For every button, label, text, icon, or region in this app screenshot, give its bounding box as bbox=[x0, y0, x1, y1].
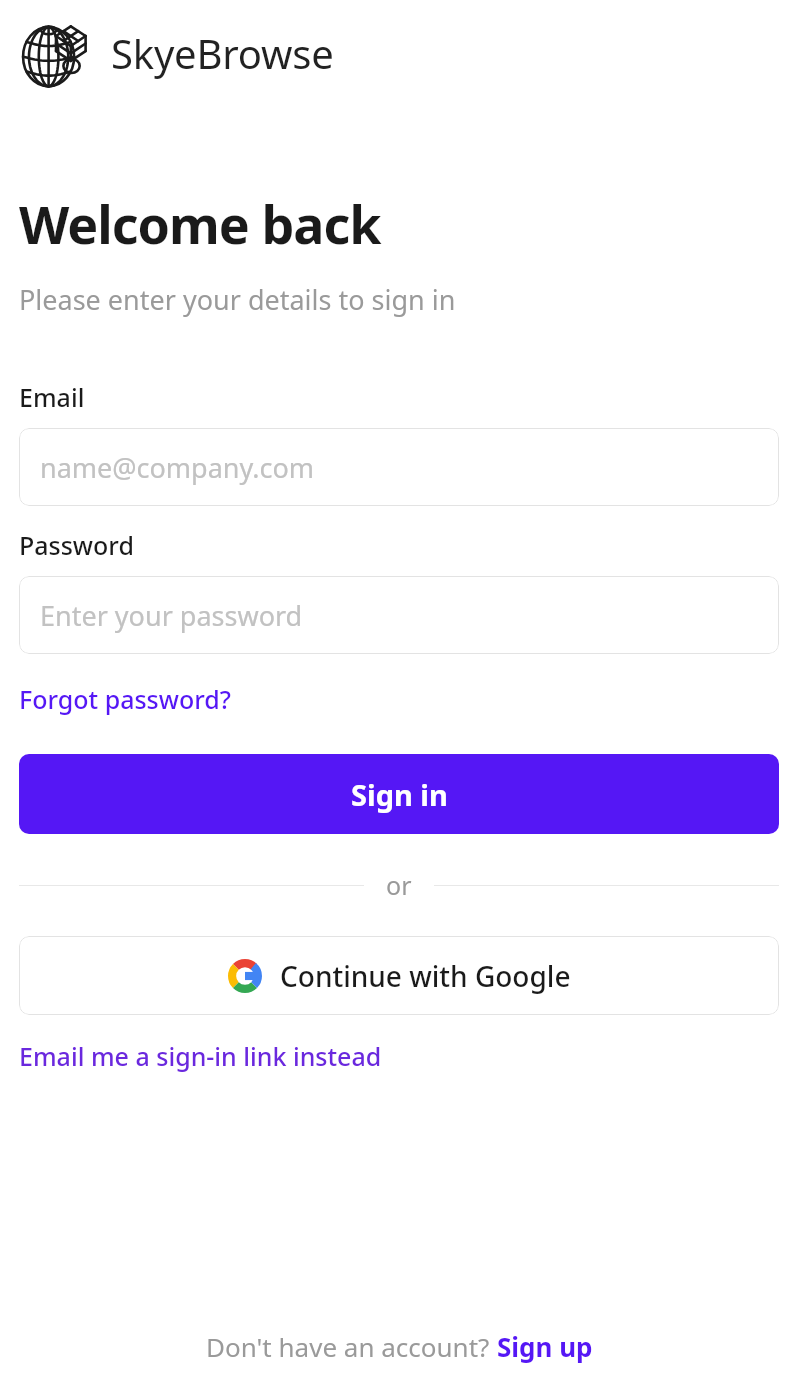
button[interactable]: Google bbox=[19, 936, 779, 1015]
button[interactable]: Enter your password bbox=[19, 576, 779, 654]
staticText: SkyeBrowse bbox=[111, 26, 334, 80]
staticText: Enter your password bbox=[40, 597, 303, 634]
staticText: Sign in bbox=[351, 775, 448, 814]
staticText: Email bbox=[19, 380, 85, 414]
staticText: Sign up bbox=[497, 1329, 593, 1364]
other: Google bbox=[228, 959, 262, 993]
button[interactable]: Email me a sign-in link instead bbox=[19, 1039, 382, 1073]
staticText: Welcome back bbox=[19, 188, 381, 259]
staticText: Don't have an account? bbox=[206, 1329, 497, 1364]
button[interactable]: SkyeBrowse logo bbox=[19, 16, 334, 90]
other: SkyeBrowse logo bbox=[19, 16, 93, 90]
staticText: name@company.com bbox=[40, 449, 315, 486]
staticText: Password bbox=[19, 528, 134, 562]
button[interactable]: Sign up bbox=[497, 1329, 593, 1364]
staticText: Email me a sign-in link instead bbox=[19, 1039, 382, 1073]
staticText: or bbox=[386, 868, 412, 902]
button[interactable]: Forgot password? bbox=[19, 682, 231, 716]
staticText: Please enter your details to sign in bbox=[19, 281, 456, 318]
staticText: Continue with Google bbox=[280, 957, 571, 995]
staticText: Forgot password? bbox=[19, 682, 231, 716]
button[interactable]: Sign in bbox=[19, 754, 779, 834]
button[interactable]: name@company.com bbox=[19, 428, 779, 506]
